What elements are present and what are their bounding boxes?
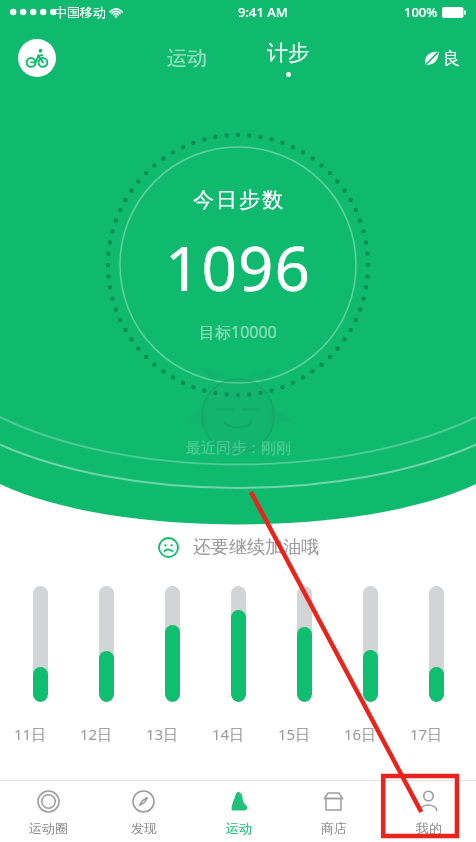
staticText: 15日	[278, 724, 330, 744]
staticText: 我的	[416, 820, 442, 836]
button[interactable]: 商店	[286, 781, 381, 842]
staticText: 计步	[267, 40, 309, 66]
button[interactable]: 发现	[96, 781, 191, 842]
staticText: 14日	[212, 724, 264, 744]
button[interactable]: 运动圈	[0, 781, 96, 842]
staticText: 中国移动	[54, 4, 106, 20]
staticText: 目标10000	[199, 321, 277, 343]
button[interactable]: 我的	[381, 781, 476, 842]
button[interactable]: 良	[419, 44, 464, 73]
staticText: 发现	[131, 820, 157, 836]
staticText: 最近同步：刚刚	[186, 439, 291, 458]
button[interactable]: 计步	[253, 34, 323, 83]
staticText: 11日	[14, 724, 66, 744]
button[interactable]: 运动	[153, 40, 221, 77]
staticText: 运动	[167, 46, 207, 71]
staticText: 今日步数	[192, 187, 284, 213]
staticText: 运动	[226, 820, 252, 836]
staticText: 17日	[410, 724, 462, 744]
button[interactable]: Profile	[18, 39, 56, 77]
staticText: 16日	[344, 724, 396, 744]
staticText: 12日	[80, 724, 132, 744]
staticText: 良	[443, 48, 460, 69]
staticText: 100%	[404, 3, 438, 21]
staticText: 9:41 AM	[238, 3, 288, 21]
staticText: 运动圈	[29, 820, 68, 836]
button[interactable]: 运动	[191, 781, 286, 842]
staticText: 1096	[165, 225, 311, 309]
staticText: 还要继续加油哦	[193, 536, 319, 559]
staticText: 13日	[146, 724, 198, 744]
staticText: 商店	[321, 820, 347, 836]
